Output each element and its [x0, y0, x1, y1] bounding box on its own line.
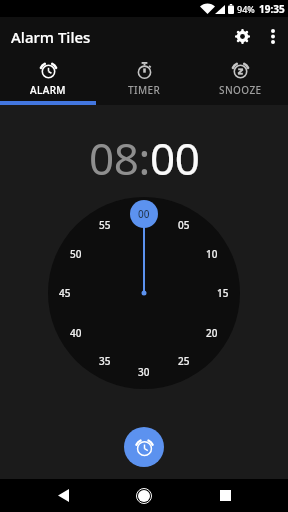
staticText: 35: [99, 354, 111, 368]
button[interactable]: [224, 17, 260, 56]
button[interactable]: SNOOZE: [192, 56, 288, 105]
button[interactable]: [124, 427, 164, 467]
staticText: SNOOZE: [219, 83, 262, 97]
staticText: 25: [178, 354, 190, 368]
button[interactable]: [47, 479, 79, 512]
staticText: 19:35: [259, 2, 285, 16]
button[interactable]: [259, 17, 286, 56]
staticText: TIMER: [128, 83, 161, 97]
staticText: 00: [150, 128, 200, 188]
staticText: Alarm Tiles: [11, 27, 91, 47]
staticText: 94%: [237, 3, 255, 15]
button[interactable]: ALARM: [0, 56, 96, 105]
staticText: 45: [59, 286, 71, 300]
staticText: 55: [99, 218, 111, 232]
staticText: 08:: [89, 128, 150, 188]
button[interactable]: [209, 479, 241, 512]
staticText: 15: [217, 286, 229, 300]
staticText: 50: [70, 247, 82, 261]
staticText: 10: [206, 247, 218, 261]
button[interactable]: [128, 479, 160, 512]
staticText: 05: [178, 218, 190, 232]
staticText: 00: [138, 207, 150, 221]
staticText: ALARM: [30, 83, 66, 97]
staticText: 40: [70, 326, 82, 340]
staticText: 20: [206, 326, 218, 340]
button[interactable]: TIMER: [96, 56, 192, 105]
staticText: 30: [138, 365, 150, 379]
